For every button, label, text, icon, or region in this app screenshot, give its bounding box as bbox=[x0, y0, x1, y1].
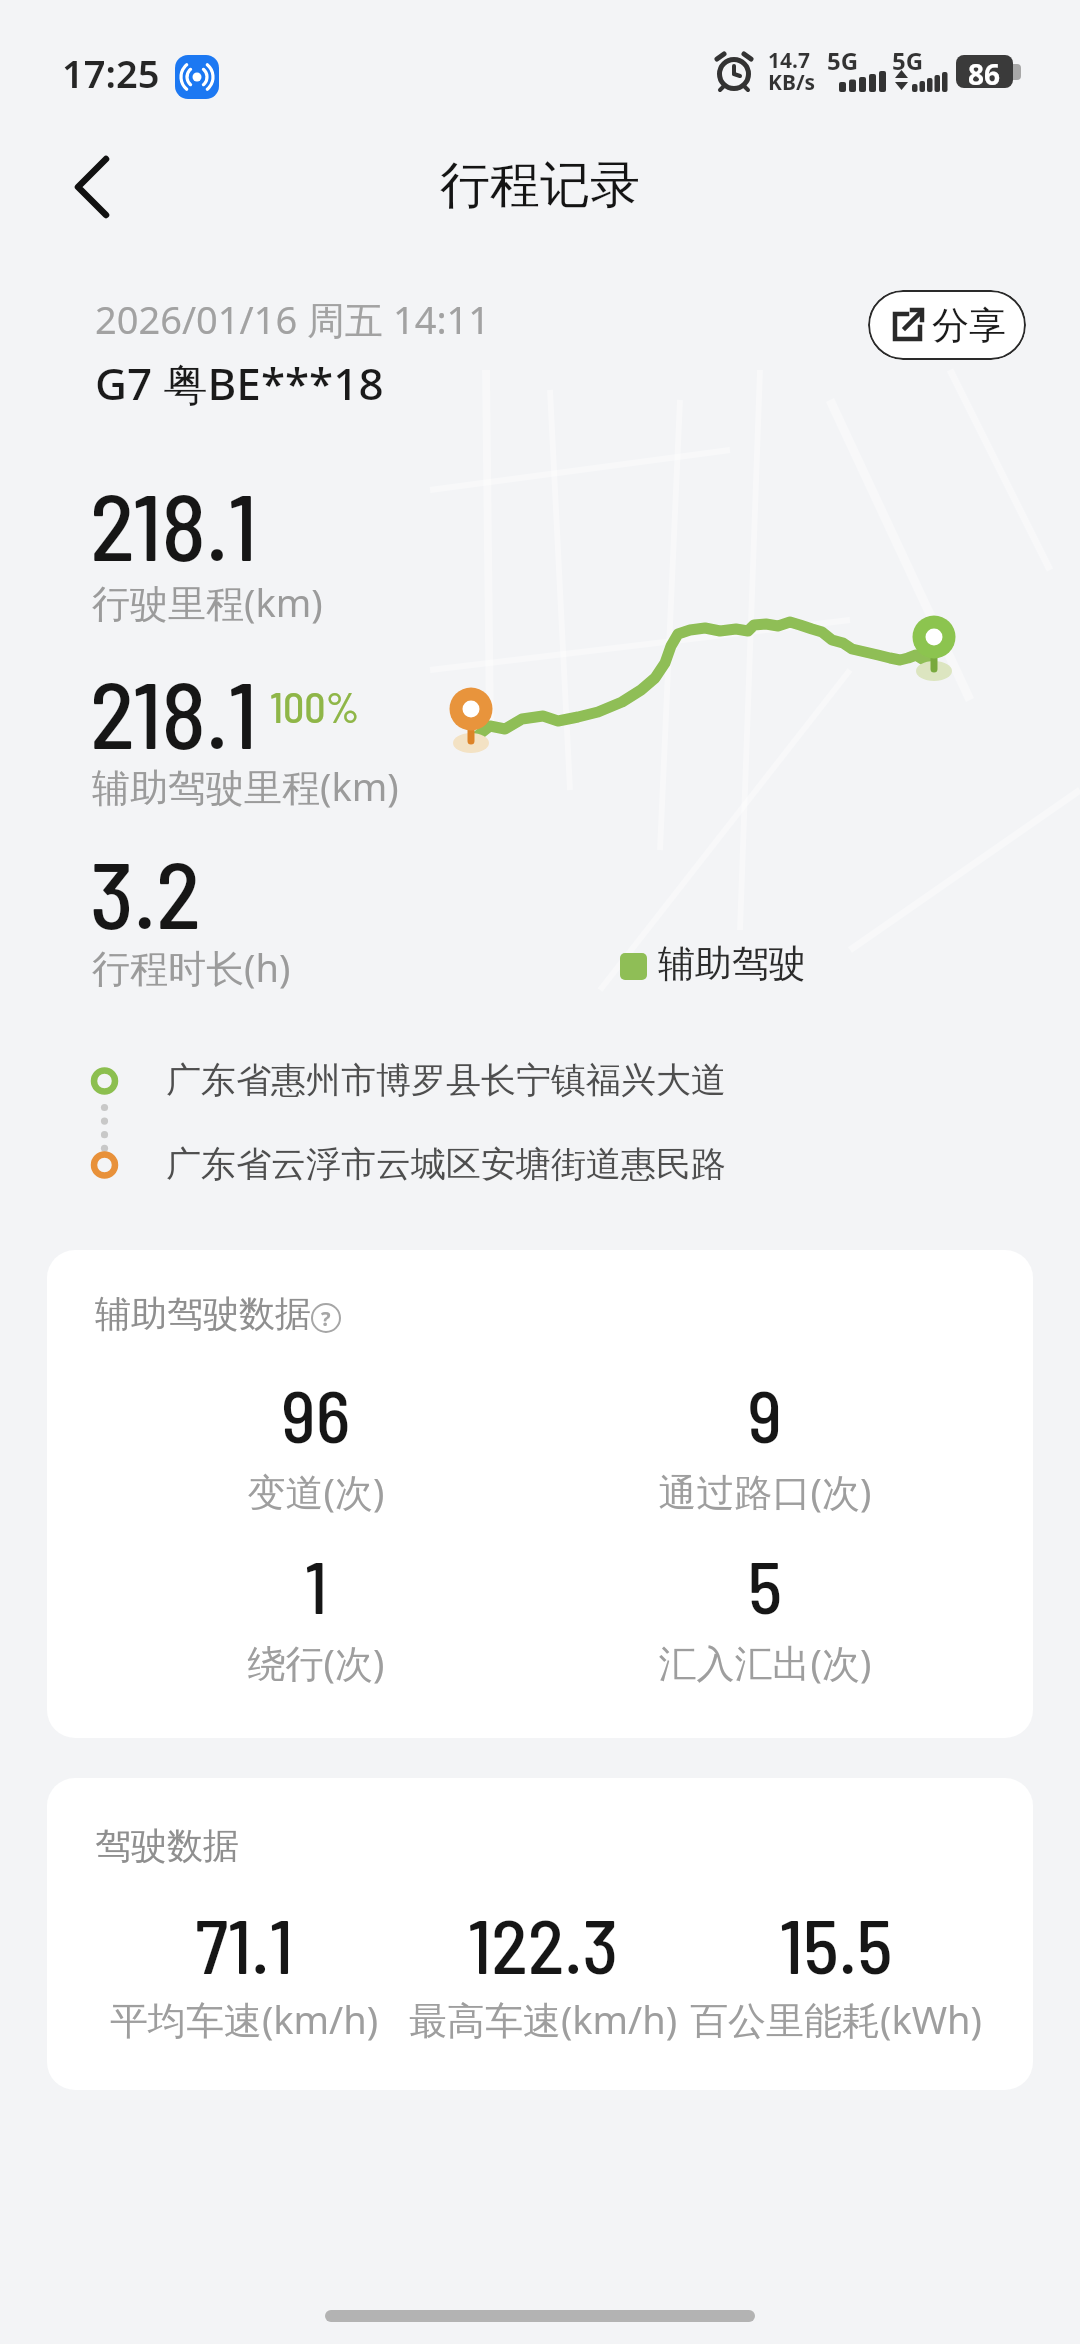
staticText: 3.2 bbox=[90, 836, 201, 948]
staticText: 122.3 bbox=[363, 1898, 723, 1989]
staticText: 百公里能耗(kWh) bbox=[656, 1993, 1016, 2045]
staticText: 汇入汇出(次) bbox=[565, 1636, 965, 1688]
staticText: 最高车速(km/h) bbox=[363, 1993, 723, 2045]
staticText: 218.1 bbox=[90, 468, 257, 580]
staticText: 96 bbox=[116, 1370, 516, 1458]
staticText: 广东省惠州市博罗县长宁镇福兴大道 bbox=[166, 1058, 726, 1102]
staticText: 行程记录 bbox=[440, 154, 640, 217]
button[interactable] bbox=[70, 157, 114, 217]
staticText: G7 粤BE***18 bbox=[95, 353, 384, 413]
staticText: 行驶里程(km) bbox=[92, 576, 323, 628]
staticText: 辅助驾驶 bbox=[658, 940, 806, 987]
staticText: 1 bbox=[116, 1541, 516, 1629]
staticText: 驾驶数据 bbox=[95, 1823, 239, 1868]
staticText: 分享 bbox=[932, 302, 1006, 349]
staticText: 2026/01/16 周五 14:11 bbox=[95, 293, 491, 345]
staticText: 广东省云浮市云城区安塘街道惠民路 bbox=[166, 1142, 726, 1186]
staticText: 71.1 bbox=[64, 1898, 424, 1989]
staticText: 218.1 bbox=[90, 656, 257, 768]
staticText: 15.5 bbox=[656, 1898, 1016, 1989]
staticText: 17:25 bbox=[62, 47, 160, 99]
staticText: 变道(次) bbox=[116, 1465, 516, 1517]
staticText: 5G bbox=[892, 44, 924, 77]
staticText: 通过路口(次) bbox=[565, 1465, 965, 1517]
staticText: 9 bbox=[565, 1370, 965, 1458]
staticText: 100% bbox=[270, 681, 360, 731]
staticText: 平均车速(km/h) bbox=[64, 1993, 424, 2045]
staticText: 辅助驾驶里程(km) bbox=[92, 760, 399, 812]
staticText: 5G bbox=[827, 44, 859, 77]
staticText: 5 bbox=[565, 1541, 965, 1629]
staticText: 辅助驾驶数据 bbox=[95, 1291, 311, 1336]
staticText: 86 bbox=[968, 55, 1001, 88]
button[interactable]: 分享 bbox=[868, 290, 1026, 360]
staticText: ? bbox=[321, 1305, 331, 1332]
staticText: KB/s bbox=[768, 68, 816, 97]
staticText: 绕行(次) bbox=[116, 1636, 516, 1688]
staticText: 14.7 bbox=[768, 46, 810, 75]
staticText: 行程时长(h) bbox=[92, 941, 291, 993]
